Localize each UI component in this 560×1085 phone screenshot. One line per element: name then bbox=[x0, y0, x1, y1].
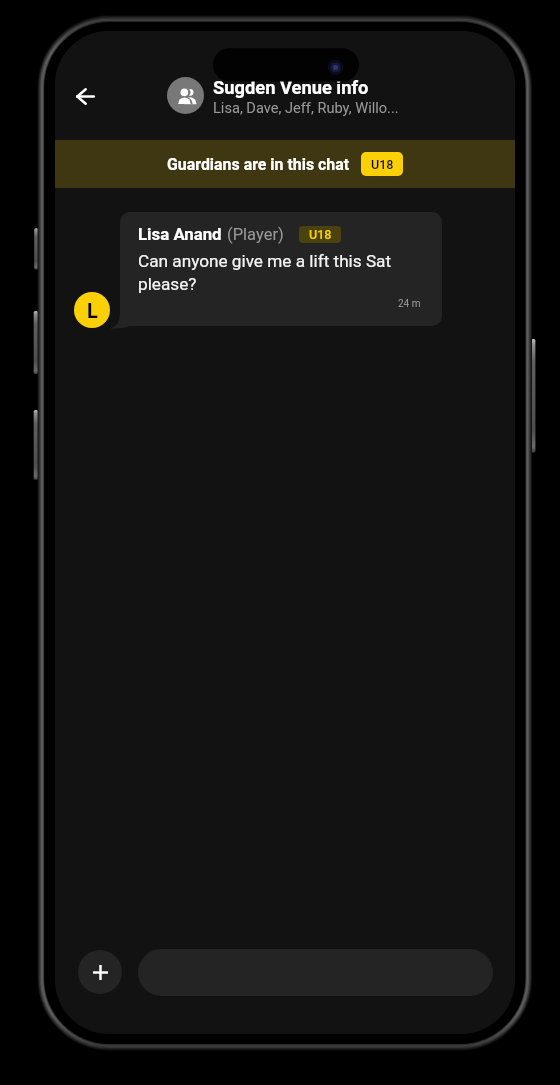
staticText: U18 bbox=[309, 227, 332, 242]
staticText: 24 m bbox=[398, 298, 421, 310]
button[interactable]: Lisa Anand bbox=[120, 212, 442, 326]
staticText: Lisa, Dave, Jeff, Ruby, Willo... bbox=[213, 99, 399, 116]
staticText: L bbox=[87, 299, 98, 322]
button[interactable]: Guardians are in this chat bbox=[55, 140, 515, 188]
button[interactable]: Add attachment bbox=[78, 950, 122, 994]
staticText: Sugden Venue info bbox=[213, 77, 369, 98]
staticText: Lisa Anand bbox=[138, 224, 222, 244]
button[interactable]: Back bbox=[61, 72, 109, 120]
staticText: (Player) bbox=[227, 225, 284, 244]
staticText: U18 bbox=[371, 157, 394, 172]
staticText: Can anyone give me a lift this Sat pleas… bbox=[138, 251, 392, 294]
staticText: Guardians are in this chat bbox=[167, 155, 350, 174]
